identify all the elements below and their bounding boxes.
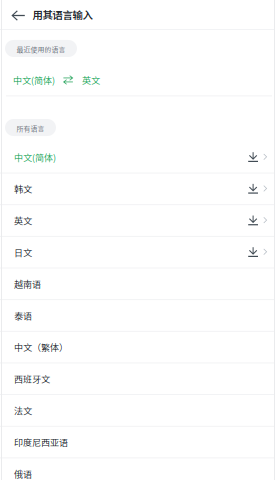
staticText: 法文 (14, 404, 32, 417)
staticText: 俄语 (14, 467, 32, 480)
staticText: 中文(简体) (13, 73, 55, 87)
button[interactable]: 西班牙文 (0, 363, 277, 395)
button[interactable]: 泰语 (0, 300, 277, 332)
staticText: 泰语 (14, 309, 32, 322)
button[interactable]: Back (1, 0, 32, 29)
staticText: 印度尼西亚语 (14, 435, 68, 449)
staticText: 所有语言 (16, 123, 44, 133)
staticText: 最近使用的语言 (16, 44, 65, 54)
staticText: 英文 (82, 73, 100, 87)
button[interactable]: 印度尼西亚语 (0, 427, 277, 458)
staticText: 英文 (14, 214, 32, 227)
button[interactable]: 中文(简体) (0, 57, 277, 95)
staticText: 中文(简体) (14, 151, 56, 164)
staticText: 韩文 (14, 182, 32, 195)
button[interactable]: 日文 (0, 237, 277, 268)
button[interactable]: 中文(简体) (0, 142, 277, 173)
staticText: 越南语 (14, 277, 41, 290)
button[interactable]: 法文 (0, 395, 277, 427)
button[interactable]: 英文 (0, 205, 277, 237)
staticText: 中文（繁体） (14, 341, 68, 354)
button[interactable]: 中文（繁体） (0, 332, 277, 363)
button[interactable]: 韩文 (0, 173, 277, 205)
staticText: 西班牙文 (14, 372, 50, 385)
staticText: 用其语言输入 (32, 7, 92, 22)
button[interactable]: 越南语 (0, 268, 277, 300)
staticText: 日文 (14, 246, 32, 259)
button[interactable]: 俄语 (0, 458, 277, 480)
